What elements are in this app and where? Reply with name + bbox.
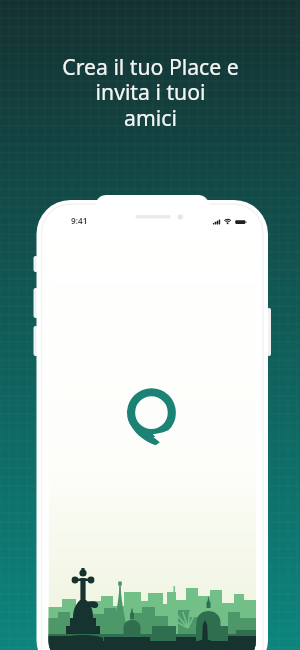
staticText: 9:41 [71, 215, 88, 226]
staticText: Crea il tuo Place e invita i tuoi amici [62, 52, 239, 132]
